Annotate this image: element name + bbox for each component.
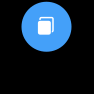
button[interactable]: Duplicate [21,2,71,52]
